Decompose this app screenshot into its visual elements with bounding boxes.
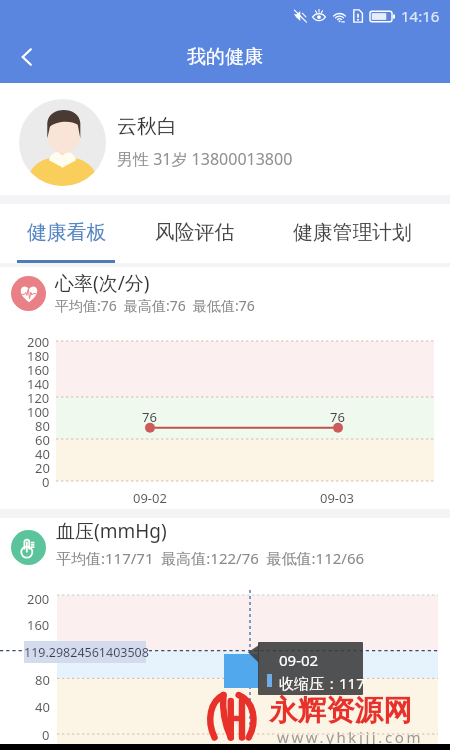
staticText: 0 bbox=[42, 726, 50, 744]
staticText: 40 bbox=[35, 445, 50, 463]
staticText: 200 bbox=[27, 333, 50, 351]
staticText: 平均值:76 最高值:76 最低值:76 bbox=[55, 296, 255, 315]
staticText: 14:16 bbox=[401, 6, 440, 26]
staticText: 健康看板 bbox=[27, 220, 107, 245]
staticText: 0 bbox=[42, 473, 50, 491]
staticText: 140 bbox=[27, 375, 50, 393]
staticText: 76 bbox=[330, 408, 345, 426]
staticText: 我的健康 bbox=[187, 45, 263, 69]
staticText: 健康管理计划 bbox=[293, 220, 412, 245]
button[interactable]: 健康看板 bbox=[8, 204, 126, 263]
staticText: 平均值:117/71 最高值:122/76 最低值:112/66 bbox=[56, 548, 365, 568]
staticText: 血压(mmHg) bbox=[56, 518, 167, 544]
staticText: 男性 31岁 13800013800 bbox=[117, 148, 293, 170]
staticText: 收缩压：117 bbox=[279, 673, 365, 693]
staticText: 200 bbox=[27, 590, 50, 608]
staticText: 160 bbox=[27, 616, 50, 634]
staticText: 100 bbox=[27, 403, 50, 421]
button[interactable]: 云秋白 bbox=[0, 83, 450, 195]
staticText: www.yhkjjj.com bbox=[277, 727, 424, 747]
staticText: 119.29824561403508 bbox=[24, 644, 149, 661]
staticText: 09-02 bbox=[279, 650, 319, 670]
staticText: 80 bbox=[35, 417, 50, 435]
staticText: 永辉资源网 bbox=[269, 693, 412, 729]
staticText: 80 bbox=[35, 671, 50, 689]
staticText: 160 bbox=[27, 361, 50, 379]
staticText: 09-02 bbox=[133, 489, 167, 507]
staticText: 180 bbox=[27, 347, 50, 365]
staticText: 120 bbox=[27, 389, 50, 407]
staticText: 20 bbox=[35, 459, 50, 477]
staticText: 09-03 bbox=[320, 489, 354, 507]
staticText: 76 bbox=[142, 408, 157, 426]
button[interactable]: Back bbox=[4, 34, 50, 80]
staticText: 风险评估 bbox=[155, 220, 235, 245]
button[interactable]: 健康管理计划 bbox=[284, 204, 420, 263]
staticText: 心率(次/分) bbox=[55, 270, 150, 296]
staticText: 60 bbox=[35, 431, 50, 449]
staticText: 40 bbox=[35, 698, 50, 716]
staticText: 云秋白 bbox=[117, 114, 177, 139]
button[interactable]: 风险评估 bbox=[136, 204, 254, 263]
